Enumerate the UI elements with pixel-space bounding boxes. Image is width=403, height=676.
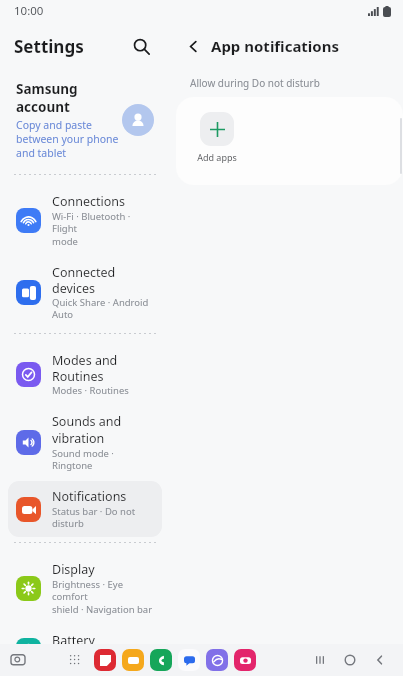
staticText: 10:00	[14, 3, 44, 19]
staticText: Battery	[52, 632, 95, 649]
staticText: Notifications	[52, 488, 127, 505]
staticText: Samsung	[16, 80, 78, 98]
button[interactable]: Samsung	[8, 70, 162, 170]
staticText: Status bar · Do not disturb	[52, 505, 154, 530]
button[interactable]: All apps	[64, 649, 86, 671]
button[interactable]: Notifications	[8, 481, 162, 537]
staticText: Copy and paste	[16, 118, 92, 132]
staticText: Modes and Routines	[52, 352, 154, 384]
staticText: Add apps	[197, 151, 237, 163]
button[interactable]: Connections	[8, 186, 162, 255]
staticText: Modes · Routines	[52, 384, 129, 397]
button[interactable]: Display	[8, 554, 162, 623]
staticText: Connections	[52, 193, 125, 210]
staticText: Sound mode · Ringtone	[52, 447, 154, 472]
staticText: Sounds and	[52, 413, 122, 430]
button[interactable]: Back	[180, 33, 206, 59]
button[interactable]: Modes and Routines	[8, 345, 162, 404]
button[interactable]: Battery	[8, 625, 162, 675]
button[interactable]: Add apps	[193, 108, 241, 167]
staticText: Power saving · Charging	[52, 649, 154, 668]
staticText: shield · Navigation bar	[52, 603, 153, 616]
staticText: Connected devices	[52, 264, 154, 296]
staticText: App notifications	[211, 36, 340, 56]
button[interactable]: Connected devices	[8, 257, 162, 328]
staticText: vibration	[52, 430, 105, 447]
staticText: Settings	[14, 35, 84, 58]
staticText: Quick Share · Android Auto	[52, 296, 154, 321]
button[interactable]: Internet	[206, 649, 228, 671]
staticText: and tablet	[16, 146, 67, 160]
button[interactable]: Samsung Notes	[94, 649, 116, 671]
button[interactable]: Messages	[178, 649, 200, 671]
staticText: Allow during Do not disturb	[190, 76, 320, 90]
button[interactable]: Search	[126, 31, 156, 61]
button[interactable]: Recent apps panel	[6, 648, 30, 672]
button[interactable]: Back	[365, 645, 395, 675]
button[interactable]: Home	[335, 645, 365, 675]
staticText: mode	[52, 235, 78, 248]
button[interactable]: Sounds and	[8, 406, 162, 479]
button[interactable]: Camera	[234, 649, 256, 671]
button[interactable]: My Files	[122, 649, 144, 671]
button[interactable]: Recents	[305, 645, 335, 675]
button[interactable]: Phone	[150, 649, 172, 671]
staticText: between your phone	[16, 132, 119, 146]
staticText: Wi-Fi · Bluetooth · Flight	[52, 210, 154, 235]
staticText: Display	[52, 561, 95, 578]
staticText: account	[16, 98, 70, 116]
staticText: Brightness · Eye comfort	[52, 578, 154, 603]
